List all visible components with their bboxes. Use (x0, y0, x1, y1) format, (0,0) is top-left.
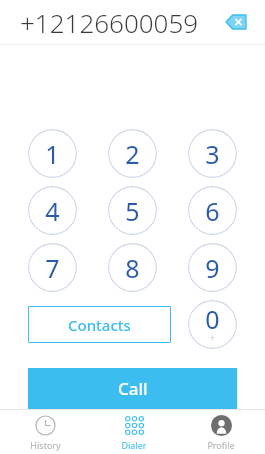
button[interactable]: Call (28, 368, 237, 409)
staticText: 8 (125, 251, 140, 285)
button[interactable]: 4 (28, 186, 77, 235)
button[interactable]: Profile (207, 410, 235, 451)
button[interactable]: Backspace (221, 7, 251, 37)
button[interactable]: History (30, 410, 61, 451)
button[interactable]: 6 (188, 186, 237, 235)
staticText: 7 (45, 251, 60, 285)
button[interactable]: 1 (28, 129, 77, 178)
staticText: Dialer (121, 439, 147, 451)
button[interactable]: 0 (188, 300, 237, 349)
button[interactable]: 8 (108, 243, 157, 292)
staticText: 1 (45, 137, 60, 171)
staticText: 6 (205, 194, 220, 228)
staticText: 5 (125, 194, 140, 228)
staticText: History (30, 439, 61, 451)
button[interactable]: 3 (188, 129, 237, 178)
button[interactable]: Contacts (28, 306, 171, 343)
staticText: 3 (205, 137, 220, 171)
staticText: 4 (45, 194, 60, 228)
button[interactable]: 9 (188, 243, 237, 292)
staticText: Profile (207, 439, 235, 451)
button[interactable]: Dialer (121, 410, 147, 451)
staticText: 0 (205, 302, 220, 336)
staticText: Contacts (68, 315, 131, 335)
staticText: + (210, 332, 215, 343)
staticText: 9 (205, 251, 220, 285)
button[interactable]: 7 (28, 243, 77, 292)
button[interactable]: 5 (108, 186, 157, 235)
staticText: 2 (125, 137, 140, 171)
staticText: Call (118, 377, 148, 400)
staticText: +12126600059 (20, 5, 199, 40)
button[interactable]: 2 (108, 129, 157, 178)
